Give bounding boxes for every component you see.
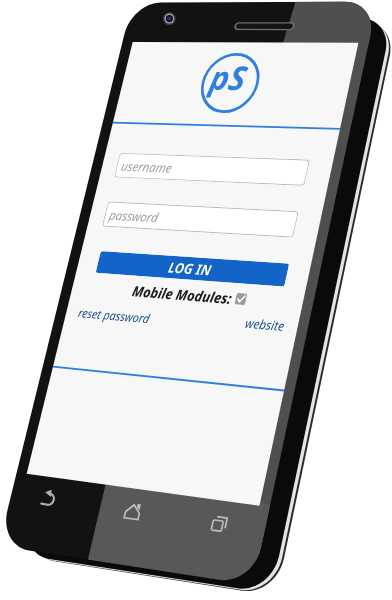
button[interactable]: reset password [76,304,152,327]
button[interactable]: password [102,201,299,238]
staticText: LOG IN [167,258,213,279]
button[interactable]: username [114,153,310,186]
staticText: password [108,206,160,226]
staticText: pS [206,54,252,99]
staticText: username [119,157,175,176]
button[interactable]: LOG IN [96,251,289,287]
button[interactable]: Mobile Modules checkbox [234,293,247,305]
staticText: Mobile Modules: [131,281,234,308]
button[interactable]: website [244,314,287,335]
